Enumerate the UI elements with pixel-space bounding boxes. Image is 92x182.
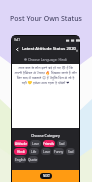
button[interactable]: Hindi (14, 148, 27, 155)
button[interactable]: Back (14, 46, 21, 53)
staticText: आज कल के लोग इतने बड़े हो गए 😎 हैं कि अप… (14, 65, 77, 85)
staticText: Post Your Own Status (0, 14, 92, 24)
staticText: Quotes (28, 158, 38, 162)
button[interactable]: Attitude (14, 140, 28, 147)
staticText: Love (32, 142, 39, 146)
button[interactable]: Life (29, 148, 39, 155)
button[interactable]: Love (30, 140, 41, 147)
staticText: Choose Language: Hindi (28, 57, 67, 62)
button[interactable]: Love (41, 148, 51, 155)
button[interactable]: Funny (53, 148, 64, 155)
staticText: Attitude (15, 142, 28, 146)
staticText: 9:41 (14, 38, 20, 42)
staticText: NEXT (43, 174, 50, 178)
staticText: Friendship (43, 142, 55, 146)
button[interactable]: English (14, 156, 26, 163)
button[interactable]: Sad (57, 140, 67, 147)
button[interactable]: Quotes (28, 156, 38, 163)
staticText: Love (43, 150, 50, 154)
button[interactable]: Sad (66, 148, 75, 155)
button[interactable]: Friendship (43, 140, 55, 147)
staticText: Life (31, 150, 37, 154)
staticText: Latest Attitude Status 2020 (22, 46, 77, 52)
staticText: Funny (54, 150, 64, 154)
staticText: Choose Category (12, 133, 79, 138)
staticText: Sad (68, 150, 74, 154)
staticText: English (15, 158, 26, 162)
staticText: Hindi (17, 150, 25, 154)
staticText: Sad (59, 142, 65, 146)
button[interactable]: NEXT (12, 170, 79, 182)
